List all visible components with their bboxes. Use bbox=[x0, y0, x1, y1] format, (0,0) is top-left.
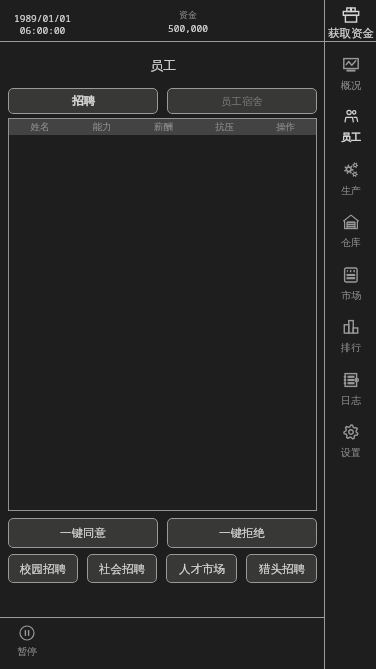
staticText: 校园招聘 bbox=[20, 562, 66, 576]
button[interactable]: 招聘 bbox=[8, 88, 158, 114]
button[interactable]: 一键同意 bbox=[8, 518, 158, 548]
staticText: 社会招聘 bbox=[99, 562, 145, 576]
button[interactable]: 人才市场 bbox=[166, 554, 237, 583]
staticText: 薪酬 bbox=[133, 121, 194, 133]
button[interactable]: 员工宿舍 bbox=[167, 88, 317, 114]
staticText: 生产 bbox=[341, 184, 361, 197]
staticText: 人才市场 bbox=[179, 562, 225, 576]
button[interactable]: 排行 bbox=[325, 319, 376, 357]
staticText: 市场 bbox=[341, 289, 361, 302]
staticText: 仓库 bbox=[341, 236, 361, 249]
staticText: 员工 bbox=[341, 131, 361, 144]
staticText: 员工宿舍 bbox=[221, 95, 263, 108]
staticText: 招聘 bbox=[72, 94, 95, 108]
button[interactable]: 一键拒绝 bbox=[167, 518, 317, 548]
staticText: 500,000 bbox=[168, 22, 208, 35]
button[interactable]: 校园招聘 bbox=[8, 554, 78, 583]
staticText: 能力 bbox=[71, 121, 133, 133]
button[interactable]: 社会招聘 bbox=[87, 554, 157, 583]
button[interactable]: 仓库 bbox=[325, 214, 376, 252]
staticText: 获取资金 bbox=[328, 26, 374, 40]
staticText: 抗压 bbox=[194, 121, 255, 133]
staticText: 一键同意 bbox=[60, 526, 106, 540]
staticText: 设置 bbox=[341, 446, 361, 459]
button[interactable]: 员工 bbox=[325, 109, 376, 147]
button[interactable]: 猎头招聘 bbox=[246, 554, 317, 583]
button[interactable]: Pause bbox=[13, 618, 40, 658]
button[interactable]: 获取资金 bbox=[325, 0, 376, 41]
staticText: 姓名 bbox=[9, 121, 71, 133]
button[interactable]: 生产 bbox=[325, 162, 376, 200]
staticText: 一键拒绝 bbox=[219, 526, 265, 540]
button[interactable]: 日志 bbox=[325, 372, 376, 410]
button[interactable]: 设置 bbox=[325, 424, 376, 462]
staticText: 1989/01/01 06:00:00 bbox=[14, 12, 72, 37]
staticText: 日志 bbox=[341, 394, 361, 407]
button[interactable]: 概况 bbox=[325, 57, 376, 95]
staticText: 概况 bbox=[341, 79, 361, 92]
staticText: 操作 bbox=[255, 121, 316, 133]
other: Pause bbox=[19, 625, 35, 641]
staticText: 资金 bbox=[179, 9, 197, 20]
staticText: 暂停 bbox=[17, 645, 37, 658]
staticText: 员工 bbox=[150, 57, 176, 73]
staticText: 猎头招聘 bbox=[259, 562, 305, 576]
staticText: 排行 bbox=[341, 341, 361, 354]
button[interactable]: 市场 bbox=[325, 267, 376, 305]
